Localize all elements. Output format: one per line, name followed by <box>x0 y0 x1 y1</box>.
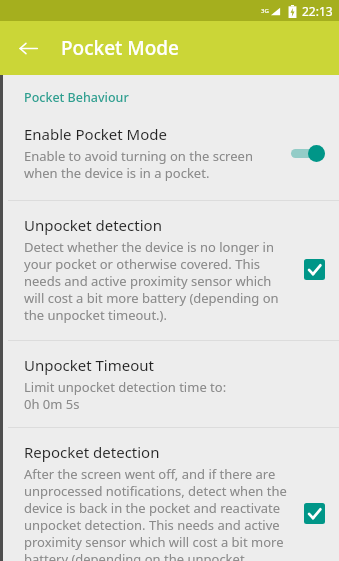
staticText: Pocket Behaviour <box>24 89 129 106</box>
button[interactable]: Repocket detection <box>0 428 339 561</box>
staticText: Enable Pocket Mode <box>24 124 167 144</box>
staticText: Repocket detection <box>24 442 160 462</box>
button[interactable]: Navigate up <box>8 28 48 68</box>
staticText: Unpocket Timeout <box>24 355 154 375</box>
staticText: 3G <box>261 7 269 15</box>
staticText: Unpocket detection <box>24 215 162 235</box>
staticText: Enable to avoid turning on the screen wh… <box>24 147 281 182</box>
staticText: 22:13 <box>302 3 333 19</box>
button[interactable]: Unpocket Timeout <box>0 341 339 427</box>
staticText: After the screen went off, and if there … <box>24 465 294 561</box>
staticText: Limit unpocket detection time to: 0h 0m … <box>24 378 227 413</box>
staticText: Detect whether the device is no longer i… <box>24 238 294 324</box>
staticText: Pocket Mode <box>61 35 180 61</box>
button[interactable]: Enable Pocket Mode <box>0 122 339 194</box>
button[interactable]: Unpocket detection <box>0 201 339 336</box>
